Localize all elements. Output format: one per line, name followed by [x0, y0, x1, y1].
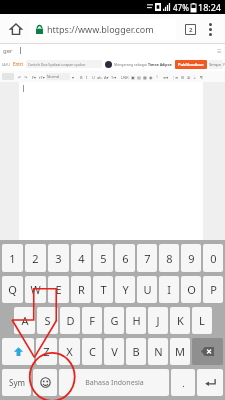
button[interactable]: 8: [159, 244, 179, 272]
staticText: ¶: [200, 75, 203, 80]
staticText: P: [210, 282, 217, 297]
button[interactable]: 0: [203, 244, 223, 272]
staticText: W: [30, 282, 41, 297]
staticText: V: [111, 344, 118, 359]
button[interactable]: Bahasa Indonesia: [59, 369, 169, 396]
button[interactable]: A: [14, 307, 35, 334]
staticText: T: [100, 282, 107, 297]
button[interactable]: ⊥: [192, 73, 198, 81]
button[interactable]: Publikasikan: [175, 60, 207, 69]
button[interactable]: Z: [36, 338, 57, 365]
button[interactable]: G: [104, 307, 124, 334]
staticText: A: [21, 313, 29, 328]
button[interactable]: ab: [96, 73, 103, 81]
button[interactable]: ↷: [23, 73, 29, 81]
button[interactable]: ▣: [130, 73, 136, 81]
button[interactable]: S: [37, 307, 58, 334]
button[interactable]: 2: [25, 244, 46, 272]
button[interactable]: 7: [137, 244, 157, 272]
button[interactable]: M: [170, 338, 190, 365]
button[interactable]: K: [170, 307, 190, 334]
button[interactable]: X: [59, 338, 80, 365]
button[interactable]: H: [126, 307, 146, 334]
button[interactable]: Simpan: [209, 60, 223, 69]
button[interactable]: T: [93, 276, 113, 303]
button[interactable]: Normal: [46, 73, 70, 80]
button[interactable]: 9: [181, 244, 201, 272]
button[interactable]: ⌷: [154, 73, 160, 81]
button[interactable]: ⋮≡: [170, 73, 180, 81]
button[interactable]: D: [60, 307, 80, 334]
button[interactable]: ◉: [148, 73, 154, 81]
staticText: ✎▾: [111, 75, 117, 80]
button[interactable]: Shift: [2, 338, 34, 365]
button[interactable]: Enter: [197, 369, 223, 396]
staticText: A▾: [104, 75, 109, 80]
button[interactable]: 6: [115, 244, 135, 272]
staticText: ▣: [131, 75, 135, 80]
button[interactable]: ✎▾: [110, 73, 118, 81]
button[interactable]: 3: [48, 244, 69, 272]
staticText: ▤: [137, 75, 141, 80]
button[interactable]: O: [181, 276, 201, 303]
staticText: ⋮≡: [171, 75, 179, 80]
staticText: O: [187, 282, 196, 297]
button[interactable]: F▾: [31, 73, 38, 81]
button[interactable]: Backspace: [192, 338, 223, 365]
staticText: 47%: [173, 2, 189, 13]
button[interactable]: .: [171, 369, 195, 396]
button[interactable]: ▤: [136, 73, 142, 81]
button[interactable]: ▦: [142, 73, 148, 81]
button[interactable]: tT▾: [38, 73, 46, 81]
button[interactable]: B: [78, 73, 84, 81]
button[interactable]: 1: [2, 244, 23, 272]
button[interactable]: I: [159, 276, 179, 303]
staticText: 2: [189, 26, 193, 34]
button[interactable]: Q: [2, 276, 23, 303]
button[interactable]: Home: [5, 18, 27, 40]
button[interactable]: Y: [115, 276, 135, 303]
button[interactable]: Emoji: [33, 369, 57, 396]
staticText: ◉: [149, 75, 153, 80]
staticText: F▾: [32, 75, 37, 80]
button[interactable]: J: [148, 307, 168, 334]
button[interactable]: 4: [71, 244, 91, 272]
button[interactable]: B: [126, 338, 146, 365]
button[interactable]: ≡▾: [162, 73, 170, 81]
button[interactable]: U: [137, 276, 157, 303]
button[interactable]: A▾: [103, 73, 110, 81]
button[interactable]: ☰: [180, 73, 186, 81]
staticText: ab: [97, 75, 102, 80]
staticText: ≣: [187, 75, 191, 80]
button[interactable]: P: [203, 276, 223, 303]
staticText: L: [199, 313, 205, 328]
staticText: ≡▾: [163, 75, 169, 80]
button[interactable]: 5: [93, 244, 113, 272]
button[interactable]: Sym: [2, 369, 31, 396]
staticText: Y: [122, 282, 129, 297]
button[interactable]: ¶: [198, 73, 204, 81]
button[interactable]: ≣: [186, 73, 192, 81]
button[interactable]: ↶: [17, 73, 23, 81]
button[interactable]: R: [71, 276, 91, 303]
button[interactable]: F: [82, 307, 102, 334]
button[interactable]: https://www.blogger.com: [30, 18, 176, 40]
button[interactable]: E: [48, 276, 69, 303]
button[interactable]: More options: [200, 19, 220, 39]
staticText: Simpan: [209, 62, 223, 67]
button[interactable]: Tabs: [180, 19, 200, 39]
staticText: 8: [166, 251, 173, 266]
button[interactable]: V: [104, 338, 124, 365]
button[interactable]: ▾: [70, 73, 76, 81]
button[interactable]: Contoh Doa Syafaat ucapan syukur: [26, 60, 102, 68]
button[interactable]: L: [192, 307, 212, 334]
button[interactable]: W: [25, 276, 46, 303]
button[interactable]: U: [90, 73, 96, 81]
button[interactable]: C: [82, 338, 102, 365]
staticText: R: [78, 282, 85, 297]
staticText: ☰: [217, 48, 222, 54]
button[interactable]: I: [84, 73, 90, 81]
button[interactable]: N: [148, 338, 168, 365]
button[interactable]: LNK: [120, 73, 130, 81]
